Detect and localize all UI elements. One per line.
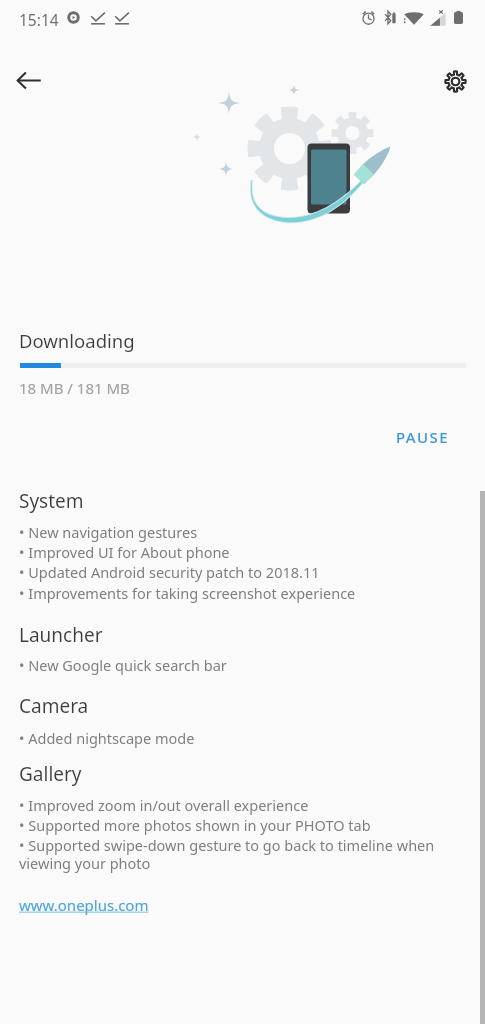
staticText: Gallery <box>19 761 82 787</box>
staticText: Launcher <box>19 622 103 648</box>
staticText: • Supported swipe-down gesture to go bac… <box>19 835 435 855</box>
staticText: Downloading <box>19 328 135 353</box>
button[interactable]: Back <box>6 57 52 103</box>
staticText: 18 MB / 181 MB <box>19 378 130 398</box>
button[interactable]: www.oneplus.com <box>19 895 149 915</box>
staticText: PAUSE <box>396 427 449 447</box>
staticText: 15:14 <box>19 9 59 30</box>
staticText: • Added nightscape mode <box>19 728 195 748</box>
staticText: • Improved UI for About phone <box>19 542 230 562</box>
staticText: • Improved zoom in/out overall experienc… <box>19 795 309 815</box>
staticText: • Supported more photos shown in your PH… <box>19 815 371 835</box>
staticText: www.oneplus.com <box>19 895 149 915</box>
staticText: • Updated Android security patch to 2018… <box>19 562 320 582</box>
staticText: System <box>19 488 84 514</box>
staticText: viewing your photo <box>19 853 151 873</box>
staticText: • New Google quick search bar <box>19 655 227 675</box>
staticText: Camera <box>19 693 89 719</box>
button[interactable]: Settings <box>432 58 478 104</box>
button[interactable]: PAUSE <box>379 419 466 455</box>
staticText: • New navigation gestures <box>19 522 198 542</box>
staticText: • Improvements for taking screenshot exp… <box>19 583 356 603</box>
